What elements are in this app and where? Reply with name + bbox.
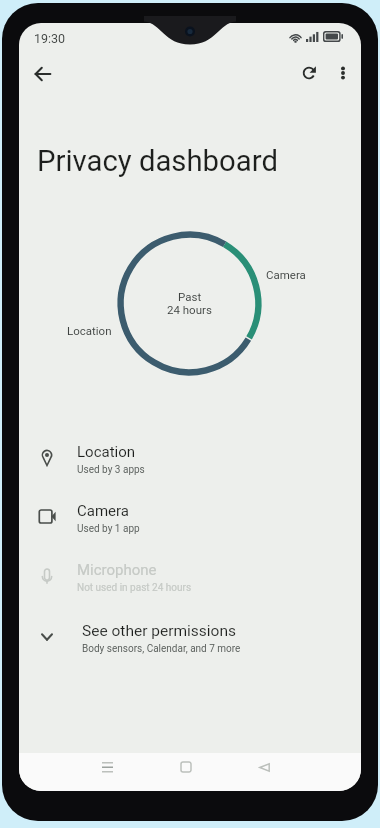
button[interactable]: Home [160,748,212,786]
button[interactable]: Location [19,431,361,489]
staticText: See other permissions [82,622,236,640]
button[interactable]: Back [23,54,63,94]
staticText: Privacy dashboard [37,144,278,178]
button[interactable]: Refresh [289,53,329,93]
staticText: 19:30 [34,31,66,46]
button[interactable]: Camera [19,490,361,548]
button[interactable]: Recents [81,748,133,786]
staticText: 24 hours [167,303,212,316]
button[interactable]: More options [323,53,361,93]
staticText: Camera [77,502,129,520]
staticText: Past [178,290,202,303]
staticText: Camera [266,268,306,281]
staticText: Location [67,324,112,337]
staticText: Microphone [77,561,157,579]
button[interactable]: Microphone [19,549,361,607]
staticText: Body sensors, Calendar, and 7 more [82,643,241,655]
staticText: Used by 1 app [77,523,140,535]
staticText: Used by 3 apps [77,464,145,476]
staticText: Location [77,443,136,461]
staticText: Not used in past 24 hours [77,582,192,594]
button[interactable]: See other permissions [19,610,361,668]
button[interactable]: Back [238,748,290,786]
